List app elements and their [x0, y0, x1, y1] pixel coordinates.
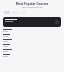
- button[interactable]: [3, 17, 61, 27]
- staticText: Most Popular Courses: [0, 2, 64, 6]
- staticText: pick up where you left: [0, 6, 64, 9]
